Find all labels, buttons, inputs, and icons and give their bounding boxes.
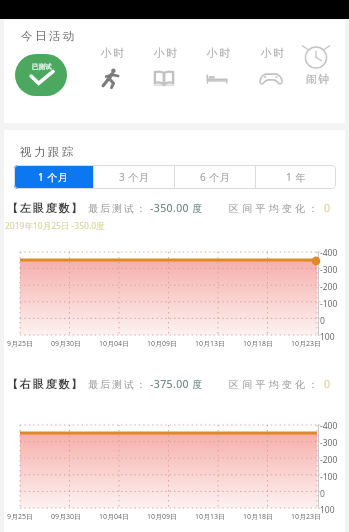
button[interactable]: 3 个月 [94,165,174,189]
staticText: -100 [320,298,338,310]
staticText: 今日活动 [21,29,77,43]
staticText: 度 [190,201,203,215]
staticText: 闹钟 [305,72,330,86]
button[interactable]: 小时 [140,46,188,90]
staticText: 0 [320,315,325,327]
staticText: 10月18日 [243,512,274,522]
staticText: 最后测试： [87,202,147,215]
staticText: 0 [324,201,331,215]
staticText: 最后测试： [87,378,147,391]
staticText: 10月23日 [291,339,322,349]
staticText: 09月30日 [51,339,82,349]
staticText: -200 [320,281,338,293]
staticText: 2019年10月25日 -350.0度 [5,220,105,232]
staticText: 6 个月 [200,170,231,184]
staticText: 10月09日 [147,512,178,522]
staticText: 区间平均变化： [229,378,322,391]
staticText: 已测试 [32,63,52,71]
staticText: 10月04日 [99,339,130,349]
button[interactable]: 6 个月 [175,165,255,189]
staticText: 小时 [260,46,285,60]
button[interactable]: 1 年 [256,165,336,189]
staticText: 10月13日 [195,512,226,522]
staticText: -300 [320,437,338,449]
staticText: -350.00 [150,201,190,215]
staticText: 10月13日 [195,339,226,349]
staticText: 100 [320,504,335,516]
staticText: -375.00 [150,377,190,391]
staticText: 3 个月 [119,170,150,184]
staticText: -100 [320,471,338,483]
staticText: 10月23日 [291,512,322,522]
staticText: 09月30日 [51,512,82,522]
staticText: 【右眼度数】 [7,377,84,391]
staticText: 10月18日 [243,339,274,349]
button[interactable]: 已测试 [15,54,67,96]
button[interactable]: 1 个月 [14,165,93,189]
staticText: 10月09日 [147,339,178,349]
button[interactable]: 小时 [193,46,241,90]
staticText: 1 年 [286,170,307,184]
staticText: -300 [320,264,338,276]
staticText: 度 [190,377,203,391]
button[interactable]: 小时 [247,46,295,90]
staticText: -400 [320,420,338,432]
button[interactable]: 小时 [87,46,135,90]
staticText: 视力跟踪 [20,145,76,159]
staticText: 10月04日 [99,512,130,522]
staticText: 0 [320,488,325,500]
staticText: 小时 [153,46,178,60]
staticText: 0 [324,377,331,391]
staticText: 1 个月 [38,170,69,184]
staticText: 9月25日 [7,339,34,349]
staticText: 区间平均变化： [229,202,322,215]
staticText: 9月25日 [7,512,34,522]
staticText: 【左眼度数】 [7,201,84,215]
staticText: 小时 [206,46,231,60]
button[interactable]: 闹钟 [294,43,338,82]
staticText: -200 [320,454,338,466]
staticText: 小时 [100,46,125,60]
staticText: -400 [320,247,338,259]
staticText: 100 [320,331,335,343]
